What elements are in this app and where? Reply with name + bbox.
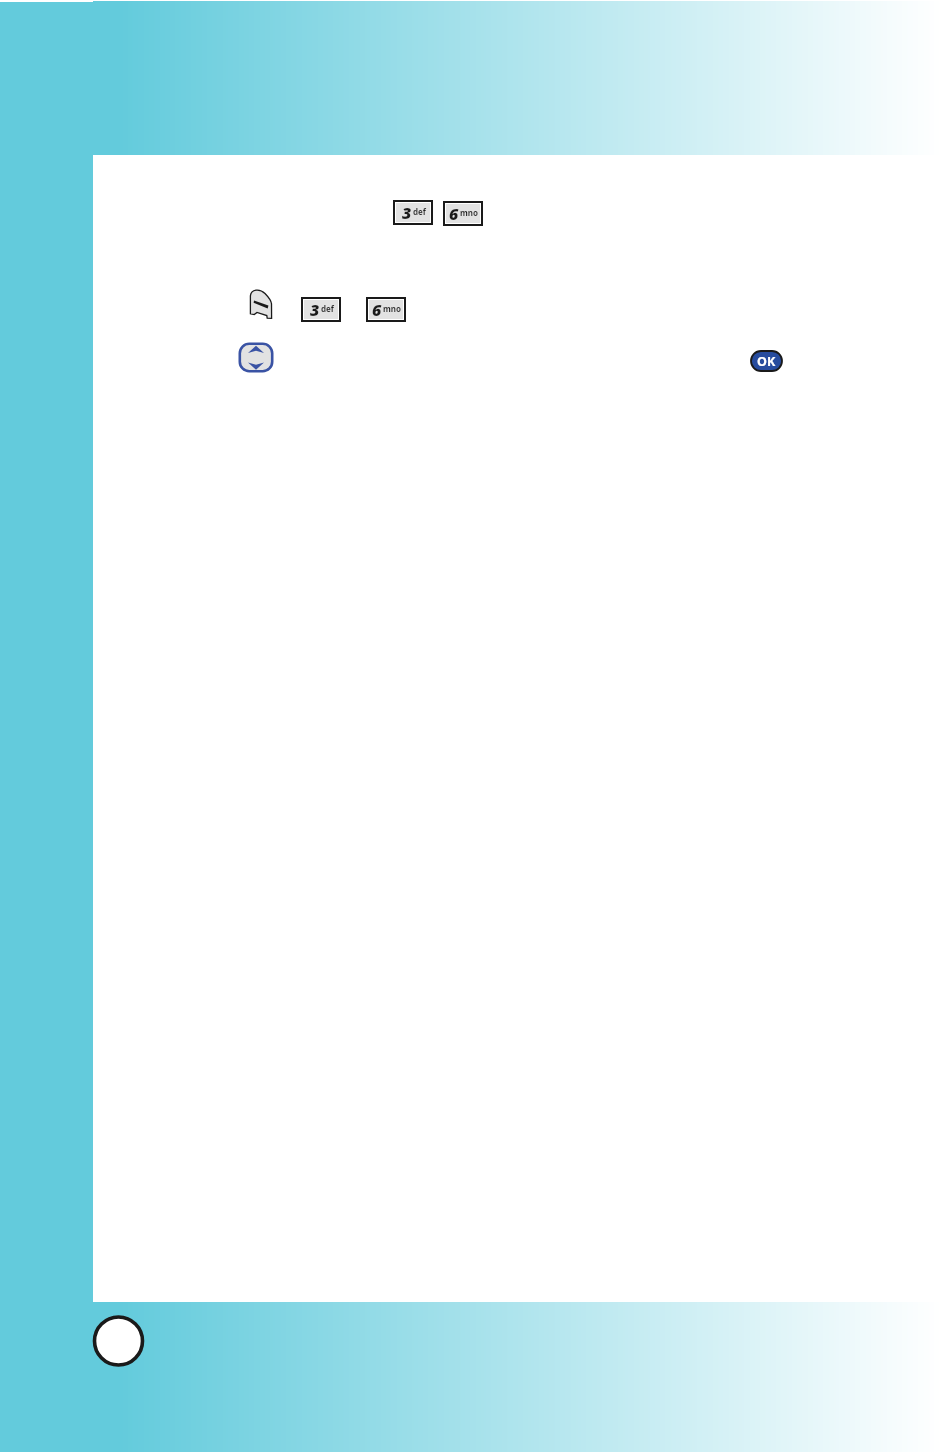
staticText: def	[413, 206, 426, 217]
button[interactable]: Key 3 def	[301, 297, 341, 322]
staticText: 6	[372, 299, 382, 318]
button[interactable]: Navigation key up and down	[238, 342, 274, 373]
staticText: OK	[757, 353, 776, 370]
button[interactable]: Soft key	[248, 288, 274, 320]
staticText: mno	[460, 207, 478, 218]
staticText: mno	[383, 303, 401, 314]
button[interactable]: OK	[750, 350, 783, 372]
button[interactable]: Key 6 mno	[443, 201, 483, 226]
button[interactable]: Key 6 mno	[366, 297, 406, 322]
staticText: 6	[449, 203, 459, 222]
staticText: 3	[402, 202, 412, 221]
button[interactable]: Key 3 def	[393, 200, 433, 225]
staticText: def	[321, 303, 334, 314]
staticText: 3	[310, 299, 320, 318]
